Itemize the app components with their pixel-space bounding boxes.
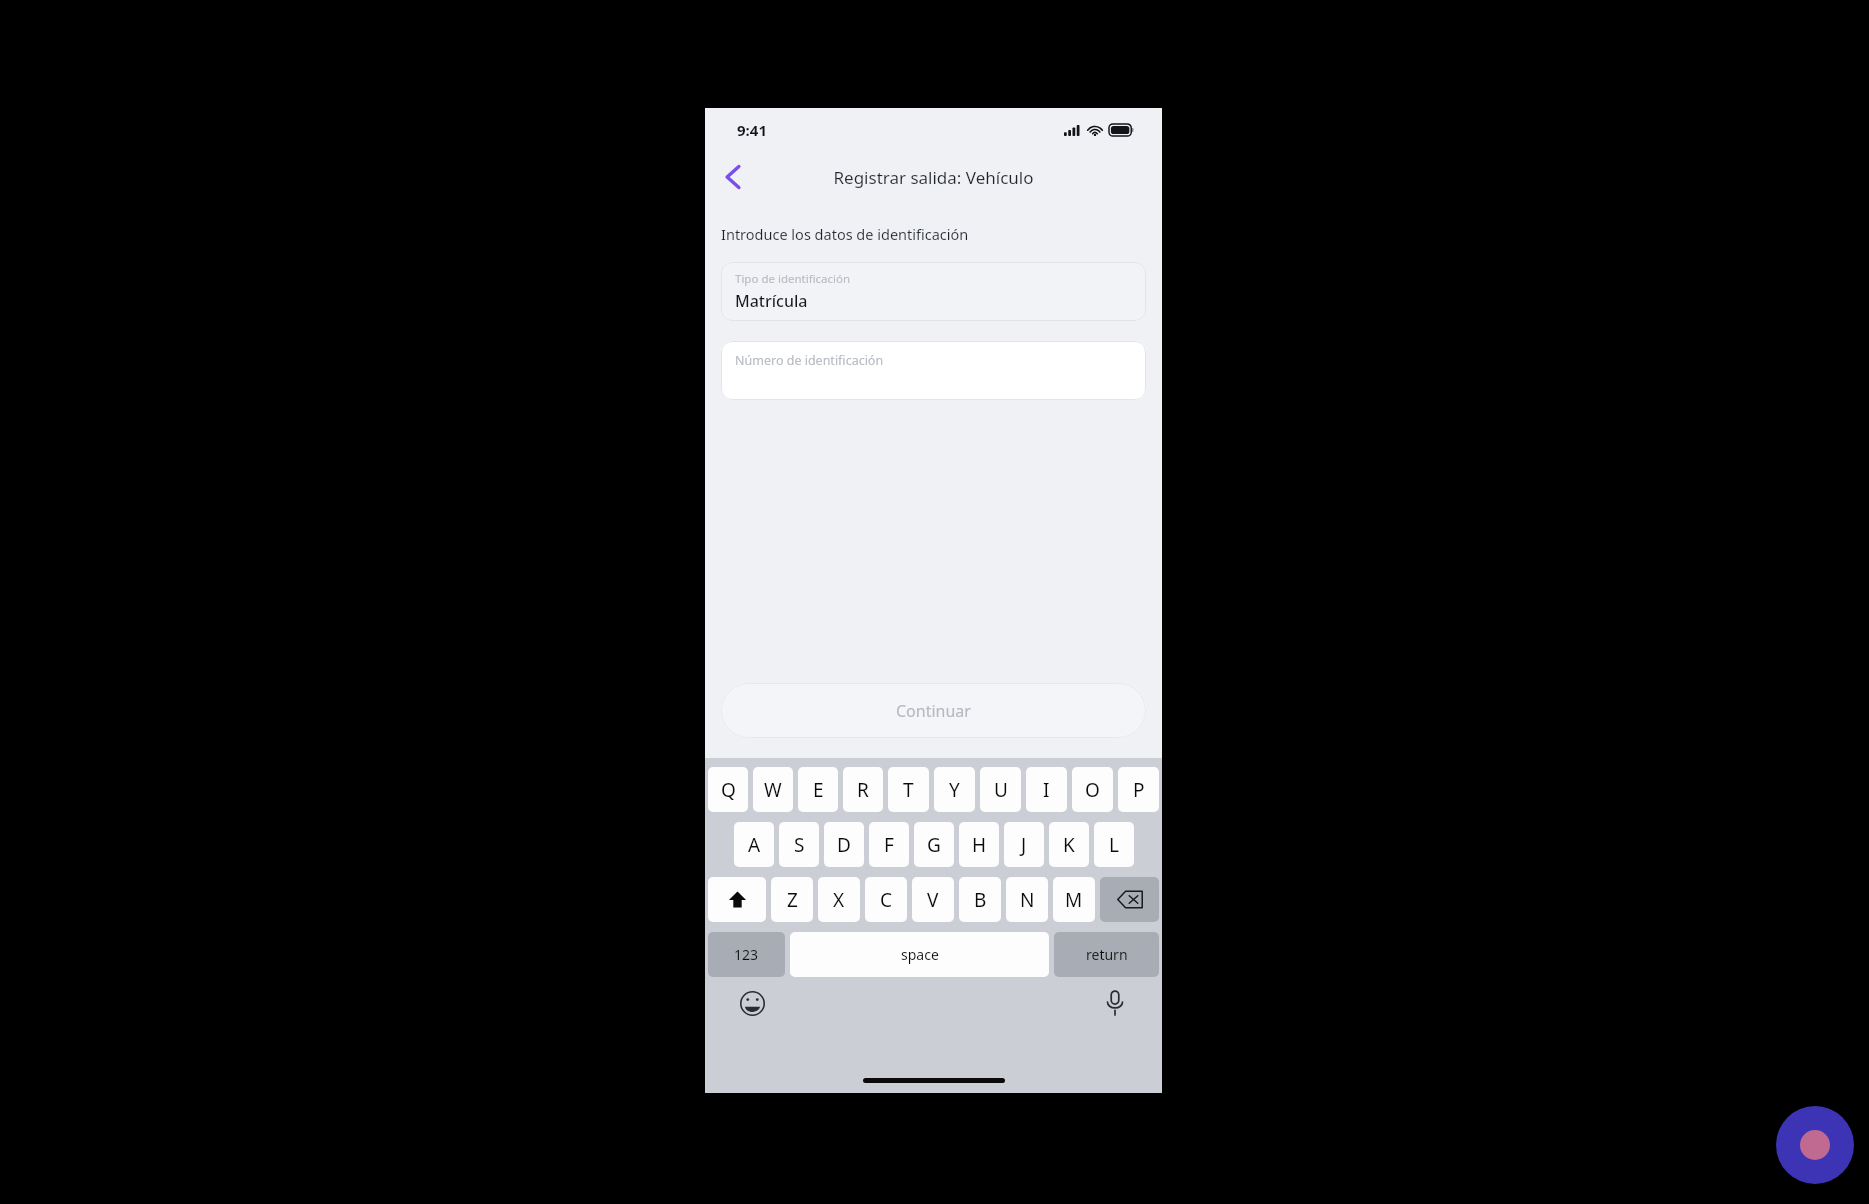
staticText: Número de identificación: [735, 352, 884, 369]
button[interactable]: Back: [711, 155, 755, 199]
button[interactable]: G: [914, 822, 954, 867]
staticText: space: [901, 945, 939, 964]
button[interactable]: L: [1094, 822, 1134, 867]
staticText: Q: [721, 777, 736, 803]
staticText: 9:41: [737, 120, 767, 140]
button[interactable]: D: [824, 822, 864, 867]
button[interactable]: U: [980, 767, 1021, 812]
button[interactable]: Tipo de identificación: [721, 262, 1146, 321]
button[interactable]: 123: [708, 932, 785, 977]
staticText: return: [1086, 945, 1128, 964]
staticText: V: [927, 887, 939, 913]
button[interactable]: B: [959, 877, 1001, 922]
button[interactable]: R: [843, 767, 883, 812]
button[interactable]: E: [798, 767, 838, 812]
staticText: J: [1021, 832, 1027, 858]
button[interactable]: O: [1072, 767, 1113, 812]
button[interactable]: W: [753, 767, 793, 812]
button[interactable]: Record: [1776, 1106, 1854, 1184]
staticText: W: [764, 777, 782, 803]
button[interactable]: Q: [708, 767, 748, 812]
button[interactable]: Backspace: [1100, 877, 1159, 922]
button[interactable]: T: [888, 767, 929, 812]
button[interactable]: Dictation: [1098, 986, 1132, 1020]
staticText: R: [857, 777, 869, 803]
button[interactable]: Y: [934, 767, 975, 812]
button[interactable]: S: [779, 822, 819, 867]
button[interactable]: J: [1004, 822, 1044, 867]
button[interactable]: N: [1006, 877, 1048, 922]
button[interactable]: Shift: [708, 877, 766, 922]
staticText: Matrícula: [735, 290, 808, 312]
staticText: Introduce los datos de identificación: [721, 224, 969, 244]
button[interactable]: H: [959, 822, 999, 867]
staticText: H: [972, 832, 987, 858]
staticText: S: [794, 832, 805, 858]
button[interactable]: return: [1054, 932, 1159, 977]
button[interactable]: M: [1053, 877, 1095, 922]
button[interactable]: Número de identificación: [721, 341, 1146, 400]
button[interactable]: A: [734, 822, 774, 867]
button[interactable]: Continuar: [721, 683, 1146, 738]
staticText: T: [903, 777, 914, 803]
staticText: M: [1065, 887, 1083, 913]
button[interactable]: I: [1026, 767, 1067, 812]
button[interactable]: K: [1049, 822, 1089, 867]
staticText: B: [974, 887, 987, 913]
staticText: F: [884, 832, 894, 858]
button[interactable]: X: [818, 877, 860, 922]
button[interactable]: C: [865, 877, 907, 922]
button[interactable]: Emoji: [735, 986, 769, 1020]
staticText: G: [927, 832, 941, 858]
button[interactable]: F: [869, 822, 909, 867]
staticText: O: [1085, 777, 1100, 803]
staticText: E: [813, 777, 824, 803]
staticText: I: [1043, 777, 1050, 803]
button[interactable]: Z: [771, 877, 813, 922]
staticText: Z: [787, 887, 798, 913]
staticText: X: [833, 887, 845, 913]
staticText: Continuar: [896, 700, 971, 722]
button[interactable]: P: [1118, 767, 1159, 812]
button[interactable]: V: [912, 877, 954, 922]
button[interactable]: space: [790, 932, 1049, 977]
staticText: L: [1109, 832, 1119, 858]
staticText: U: [994, 777, 1008, 803]
staticText: P: [1133, 777, 1145, 803]
staticText: Y: [949, 777, 960, 803]
staticText: D: [837, 832, 851, 858]
staticText: 123: [734, 945, 759, 964]
staticText: C: [880, 887, 893, 913]
staticText: A: [748, 832, 761, 858]
staticText: Tipo de identificación: [735, 271, 851, 287]
staticText: K: [1063, 832, 1075, 858]
staticText: N: [1020, 887, 1035, 913]
staticText: Registrar salida: Vehículo: [833, 166, 1034, 189]
